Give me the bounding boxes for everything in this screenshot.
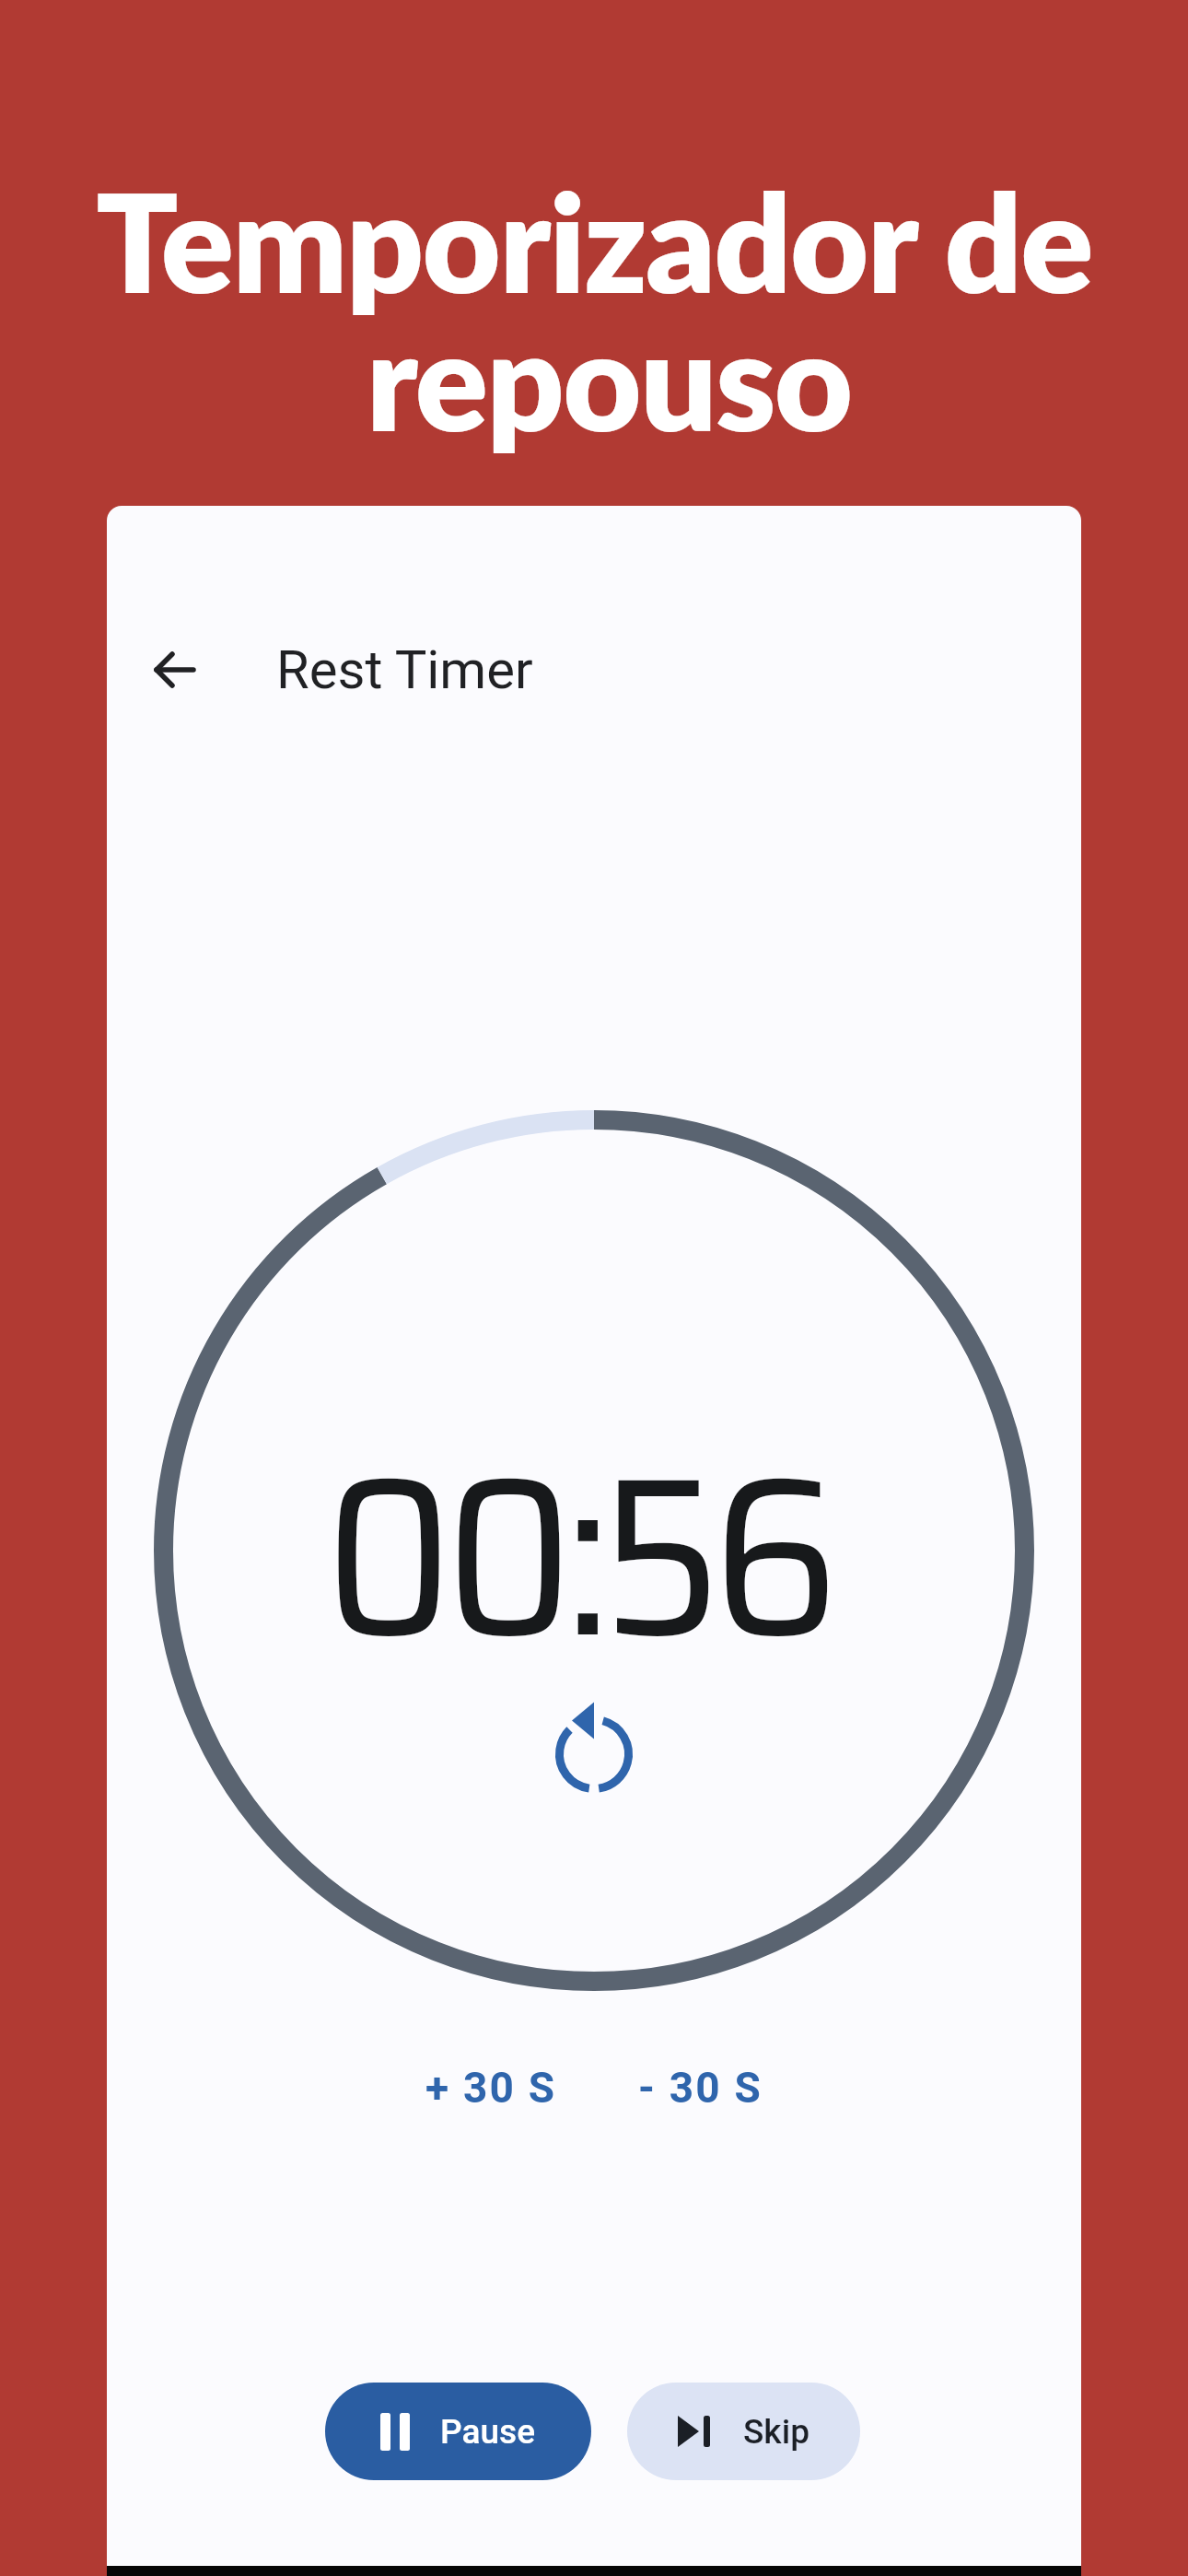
staticText: 00:56 — [107, 1380, 1064, 1732]
staticText: Rest Timer — [276, 638, 533, 701]
staticText: - 30 S — [638, 2063, 763, 2113]
staticText: Temporizador de repouso — [0, 159, 1188, 461]
button[interactable] — [539, 1694, 649, 1805]
staticText: Pause — [440, 2412, 536, 2452]
button[interactable]: - 30 S — [638, 2063, 763, 2113]
button[interactable]: + 30 S — [425, 2063, 557, 2113]
staticText: + 30 S — [425, 2063, 557, 2113]
button[interactable]: Skip — [627, 2383, 860, 2480]
button[interactable]: Pause — [325, 2383, 591, 2480]
staticText: Skip — [743, 2412, 809, 2452]
button[interactable] — [133, 628, 217, 711]
